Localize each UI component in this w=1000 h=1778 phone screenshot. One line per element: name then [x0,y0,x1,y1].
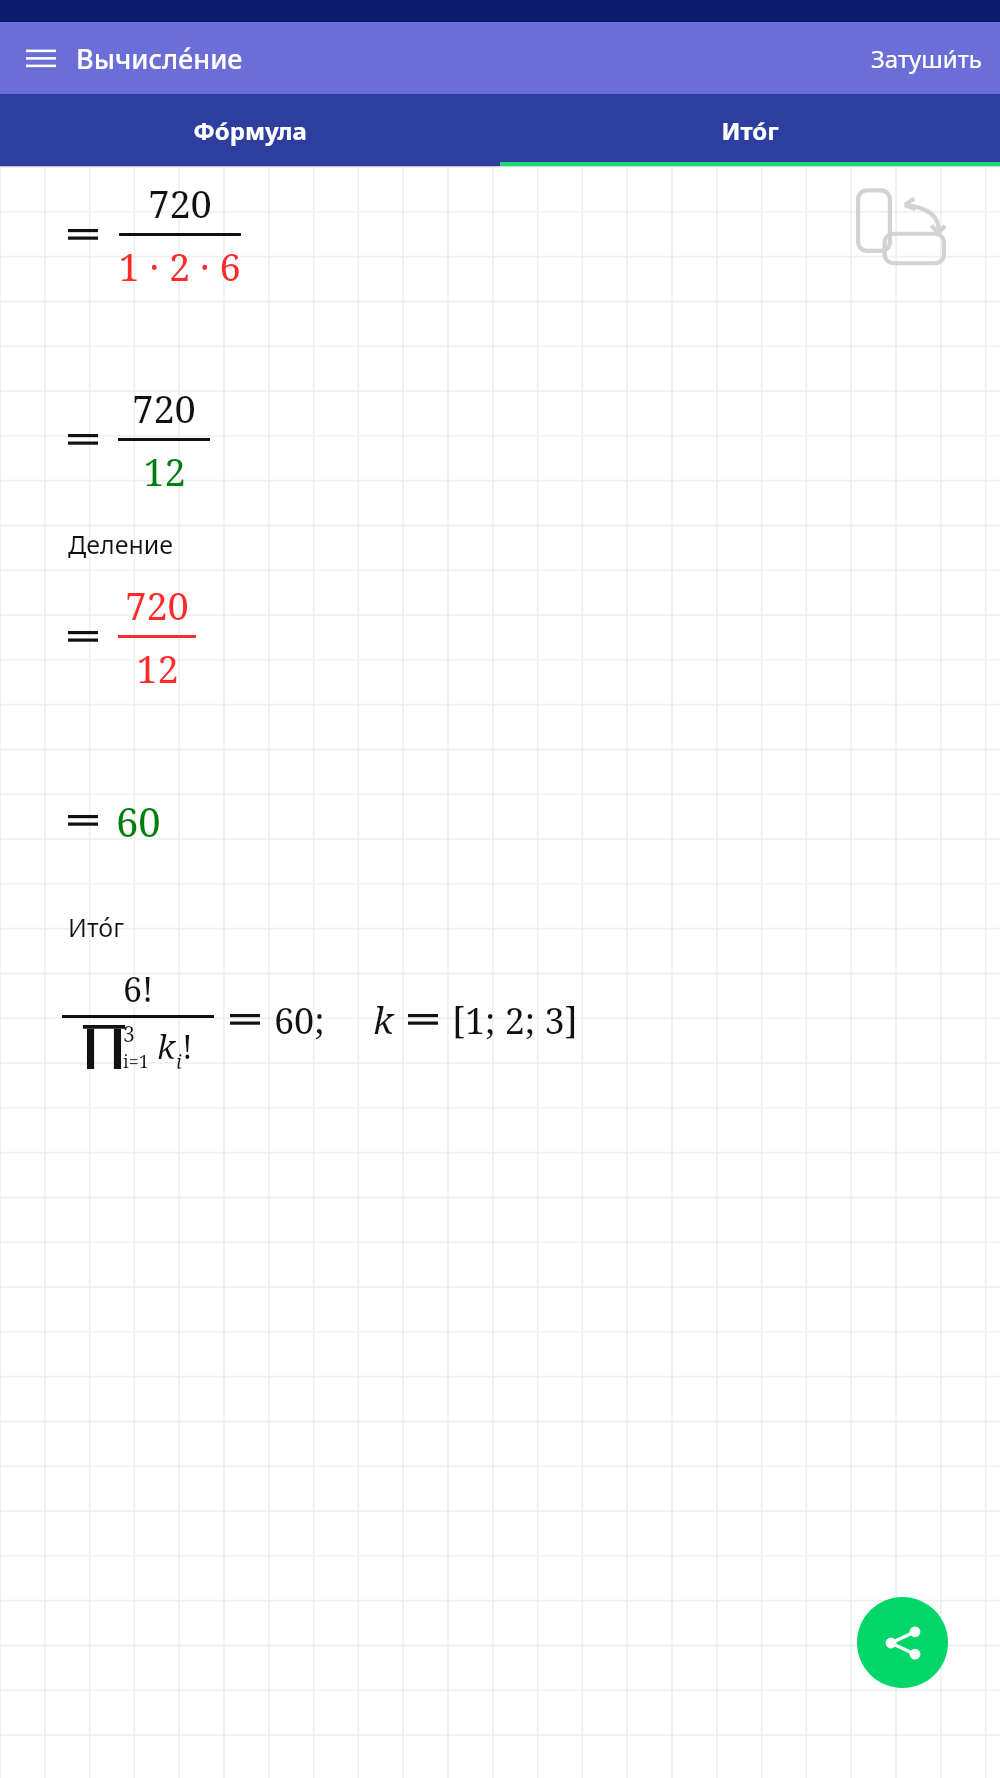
staticText: 12 [143,445,186,497]
staticText: 60 [116,794,161,848]
button[interactable]: Rotate device [856,187,962,269]
staticText: 720 [148,177,212,229]
button[interactable]: Share [857,1597,948,1688]
staticText: 12 [136,642,179,694]
button[interactable]: Ито́г [500,94,1000,167]
button[interactable]: Фо́рмула [0,94,500,167]
staticText: Ито́г [68,910,125,944]
staticText: Деление [68,527,174,561]
staticText: 6! [123,966,154,1012]
staticText: Ито́г [721,114,779,147]
staticText: k [157,1025,176,1069]
staticText: k [373,996,394,1045]
staticText: 60; [274,996,325,1045]
staticText: 3 [123,1020,135,1049]
staticText: i=1 [123,1049,149,1074]
button[interactable]: Затуши́ть [853,32,1000,85]
staticText: Фо́рмула [193,114,307,147]
staticText: ! [182,1025,193,1069]
staticText: i [176,1049,182,1075]
staticText: Затуши́ть [871,42,982,75]
staticText: 720 [125,579,189,631]
staticText: [1; 2; 3] [452,996,578,1045]
staticText: 720 [132,382,196,434]
staticText: Вычисле́ние [76,40,243,77]
staticText: 1 · 2 · 6 [118,240,241,292]
button[interactable]: Open navigation menu [18,35,64,81]
